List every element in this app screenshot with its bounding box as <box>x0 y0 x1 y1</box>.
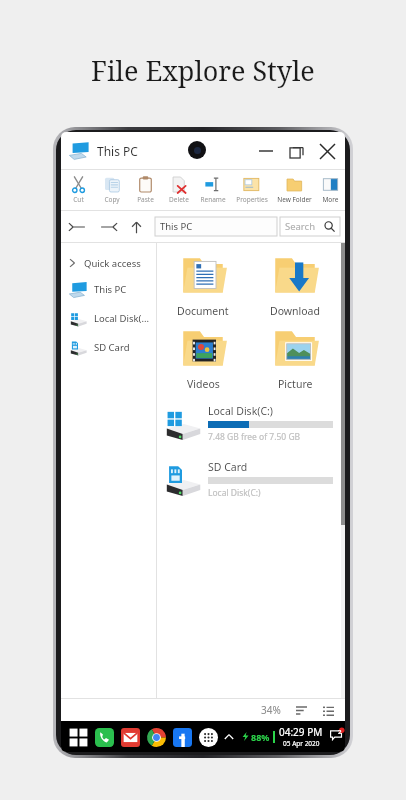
staticText: Document <box>177 304 229 318</box>
staticText: Videos <box>187 377 220 391</box>
staticText: 7.48 GB free of 7.50 GB <box>208 431 301 443</box>
button[interactable]: Up <box>126 217 146 237</box>
button[interactable]: Quick access <box>61 251 156 275</box>
button[interactable]: Details view <box>293 702 309 718</box>
staticText: Paste <box>137 195 154 204</box>
staticText: Delete <box>169 195 189 204</box>
staticText: File Explore Style <box>91 52 315 89</box>
staticText: 2 <box>338 728 342 736</box>
staticText: Local Disk(... <box>94 312 150 325</box>
button[interactable]: Apps <box>195 724 221 750</box>
button[interactable]: Show hidden icons <box>221 729 237 745</box>
staticText: Search <box>280 220 316 233</box>
staticText: Picture <box>278 377 313 391</box>
button[interactable]: Back <box>69 217 89 237</box>
button[interactable]: Videos <box>157 324 249 391</box>
staticText: Local Disk(C:) <box>208 404 273 418</box>
button[interactable]: Gmail <box>117 724 143 750</box>
staticText: Local Disk(C:) <box>208 487 261 499</box>
staticText: This PC <box>94 283 127 296</box>
button[interactable]: Picture <box>249 324 341 391</box>
button[interactable]: New Folder <box>273 170 315 210</box>
button[interactable]: Download <box>249 251 341 318</box>
button[interactable]: Local Disk(C:) <box>157 404 341 443</box>
button[interactable]: Close <box>311 135 343 167</box>
button[interactable]: Notifications <box>329 726 345 748</box>
staticText: SD Card <box>94 341 130 354</box>
staticText: More <box>322 195 339 204</box>
staticText: Copy <box>104 195 120 204</box>
button[interactable]: This PC <box>155 217 277 236</box>
button[interactable]: Search <box>280 217 340 236</box>
button[interactable]: Maximize <box>281 136 311 166</box>
staticText: Download <box>270 304 320 318</box>
button[interactable]: Local Disk(... <box>61 304 156 333</box>
staticText: Cut <box>73 195 84 204</box>
button[interactable]: Paste <box>129 170 162 210</box>
button[interactable]: This PC <box>61 275 156 304</box>
button[interactable]: Cut <box>61 170 95 210</box>
button[interactable]: Minimize <box>251 136 281 166</box>
staticText: 88% <box>251 731 270 743</box>
staticText: 04:29 PM <box>279 725 323 739</box>
button[interactable]: Forward <box>97 217 117 237</box>
button[interactable]: Rename <box>195 170 230 210</box>
staticText: 05 Apr 2020 <box>283 739 320 748</box>
staticText: This PC <box>155 220 193 233</box>
button[interactable]: Facebook <box>169 724 195 750</box>
staticText: New Folder <box>277 195 312 204</box>
staticText: This PC <box>97 143 138 159</box>
staticText: SD Card <box>208 460 248 474</box>
button[interactable]: More <box>315 170 345 210</box>
button[interactable]: Document <box>157 251 249 318</box>
button[interactable]: Phone <box>91 724 117 750</box>
staticText: Properties <box>236 195 268 204</box>
button[interactable]: Chrome <box>143 724 169 750</box>
staticText: Rename <box>200 195 226 204</box>
button[interactable]: Copy <box>95 170 129 210</box>
button[interactable]: SD Card <box>61 333 156 362</box>
staticText: Quick access <box>84 257 141 270</box>
button[interactable]: Start <box>65 724 91 750</box>
button[interactable]: Delete <box>162 170 195 210</box>
button[interactable]: SD Card <box>157 460 341 499</box>
button[interactable]: Properties <box>230 170 273 210</box>
staticText: 34% <box>261 703 281 717</box>
button[interactable]: List view <box>320 702 336 718</box>
